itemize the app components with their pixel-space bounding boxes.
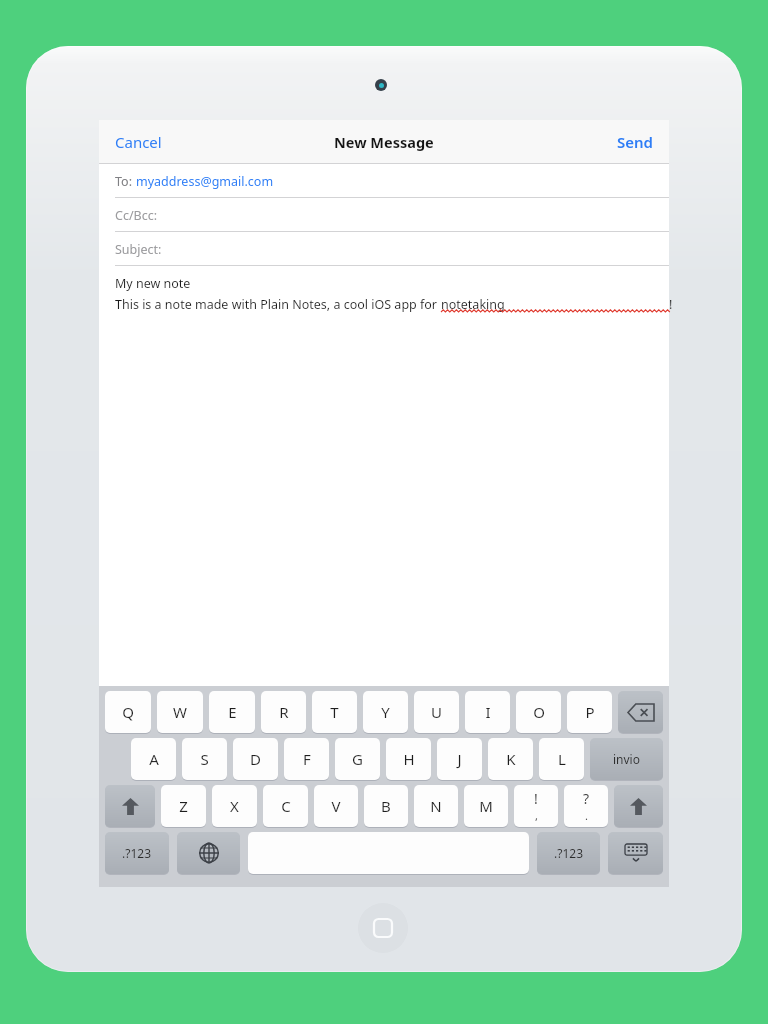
staticText: invio — [613, 751, 640, 767]
staticText: J — [457, 749, 462, 769]
staticText: L — [558, 749, 566, 769]
staticText: S — [200, 749, 209, 769]
button[interactable]: F — [284, 738, 329, 780]
staticText: M — [479, 796, 493, 816]
staticText: C — [281, 796, 291, 816]
button[interactable]: My new note — [99, 266, 669, 686]
staticText: U — [431, 702, 442, 722]
button[interactable]: T — [312, 691, 357, 733]
button[interactable]: J — [437, 738, 482, 780]
staticText: myaddress@gmail.com — [136, 173, 274, 190]
button[interactable]: Change keyboard — [177, 832, 240, 874]
button[interactable]: Backspace — [618, 691, 663, 733]
staticText: E — [228, 702, 237, 722]
button[interactable]: Cancel — [99, 120, 178, 164]
staticText: ? — [583, 789, 590, 808]
staticText: Z — [179, 796, 188, 816]
staticText: To: — [115, 173, 132, 190]
button[interactable]: .?123 — [105, 832, 169, 874]
button[interactable]: Send — [601, 120, 669, 164]
staticText: Subject: — [115, 241, 162, 258]
button[interactable]: Shift — [614, 785, 663, 827]
button[interactable]: C — [263, 785, 308, 827]
button[interactable]: Y — [363, 691, 408, 733]
staticText: T — [330, 702, 339, 722]
staticText: R — [279, 702, 289, 722]
button[interactable]: Home — [358, 903, 408, 953]
staticText: H — [403, 749, 415, 769]
button[interactable]: W — [157, 691, 203, 733]
staticText: K — [506, 749, 516, 769]
button[interactable]: X — [212, 785, 257, 827]
button[interactable]: To: — [99, 164, 669, 198]
button[interactable]: A — [131, 738, 176, 780]
button[interactable]: I — [465, 691, 510, 733]
staticText: . — [585, 808, 588, 823]
button[interactable]: M — [464, 785, 508, 827]
button[interactable]: ! — [514, 785, 558, 827]
button[interactable]: Z — [161, 785, 206, 827]
button[interactable]: O — [516, 691, 561, 733]
staticText: O — [533, 702, 545, 722]
staticText: Cc/Bcc: — [115, 207, 158, 224]
button[interactable]: Q — [105, 691, 151, 733]
button[interactable]: N — [414, 785, 458, 827]
staticText: My new note — [115, 275, 191, 292]
button[interactable]: K — [488, 738, 533, 780]
staticText: F — [303, 749, 311, 769]
staticText: X — [230, 796, 239, 816]
button[interactable]: Cc/Bcc: — [99, 198, 669, 232]
button[interactable]: U — [414, 691, 459, 733]
staticText: D — [250, 749, 261, 769]
staticText: Send — [617, 132, 653, 152]
button[interactable]: H — [386, 738, 431, 780]
staticText: V — [331, 796, 341, 816]
staticText: N — [430, 796, 442, 816]
button[interactable]: R — [261, 691, 306, 733]
button[interactable]: invio — [590, 738, 663, 780]
staticText: I — [485, 702, 491, 722]
staticText: Cancel — [115, 132, 162, 152]
staticText: notetaking — [441, 296, 505, 313]
button[interactable]: S — [182, 738, 227, 780]
button[interactable]: ? — [564, 785, 608, 827]
staticText: , — [535, 808, 538, 823]
button[interactable]: G — [335, 738, 380, 780]
staticText: .?123 — [554, 845, 584, 861]
button[interactable]: Hide keyboard — [608, 832, 663, 874]
button[interactable]: L — [539, 738, 584, 780]
staticText: Y — [381, 702, 390, 722]
button[interactable]: B — [364, 785, 408, 827]
staticText: A — [149, 749, 159, 769]
button[interactable]: E — [209, 691, 255, 733]
button[interactable]: Shift — [105, 785, 155, 827]
staticText: W — [173, 702, 187, 722]
staticText: P — [585, 702, 595, 722]
staticText: B — [381, 796, 391, 816]
button[interactable]: .?123 — [537, 832, 600, 874]
staticText: ! — [534, 789, 538, 808]
staticText: .?123 — [122, 845, 152, 861]
staticText: This is a note made with Plain Notes, a … — [115, 296, 441, 313]
button[interactable]: Subject: — [99, 232, 669, 266]
staticText: Q — [122, 702, 134, 722]
staticText: G — [352, 749, 363, 769]
staticText: New Message — [334, 132, 434, 152]
button[interactable]: P — [567, 691, 612, 733]
button[interactable]: V — [314, 785, 358, 827]
button[interactable]: D — [233, 738, 278, 780]
